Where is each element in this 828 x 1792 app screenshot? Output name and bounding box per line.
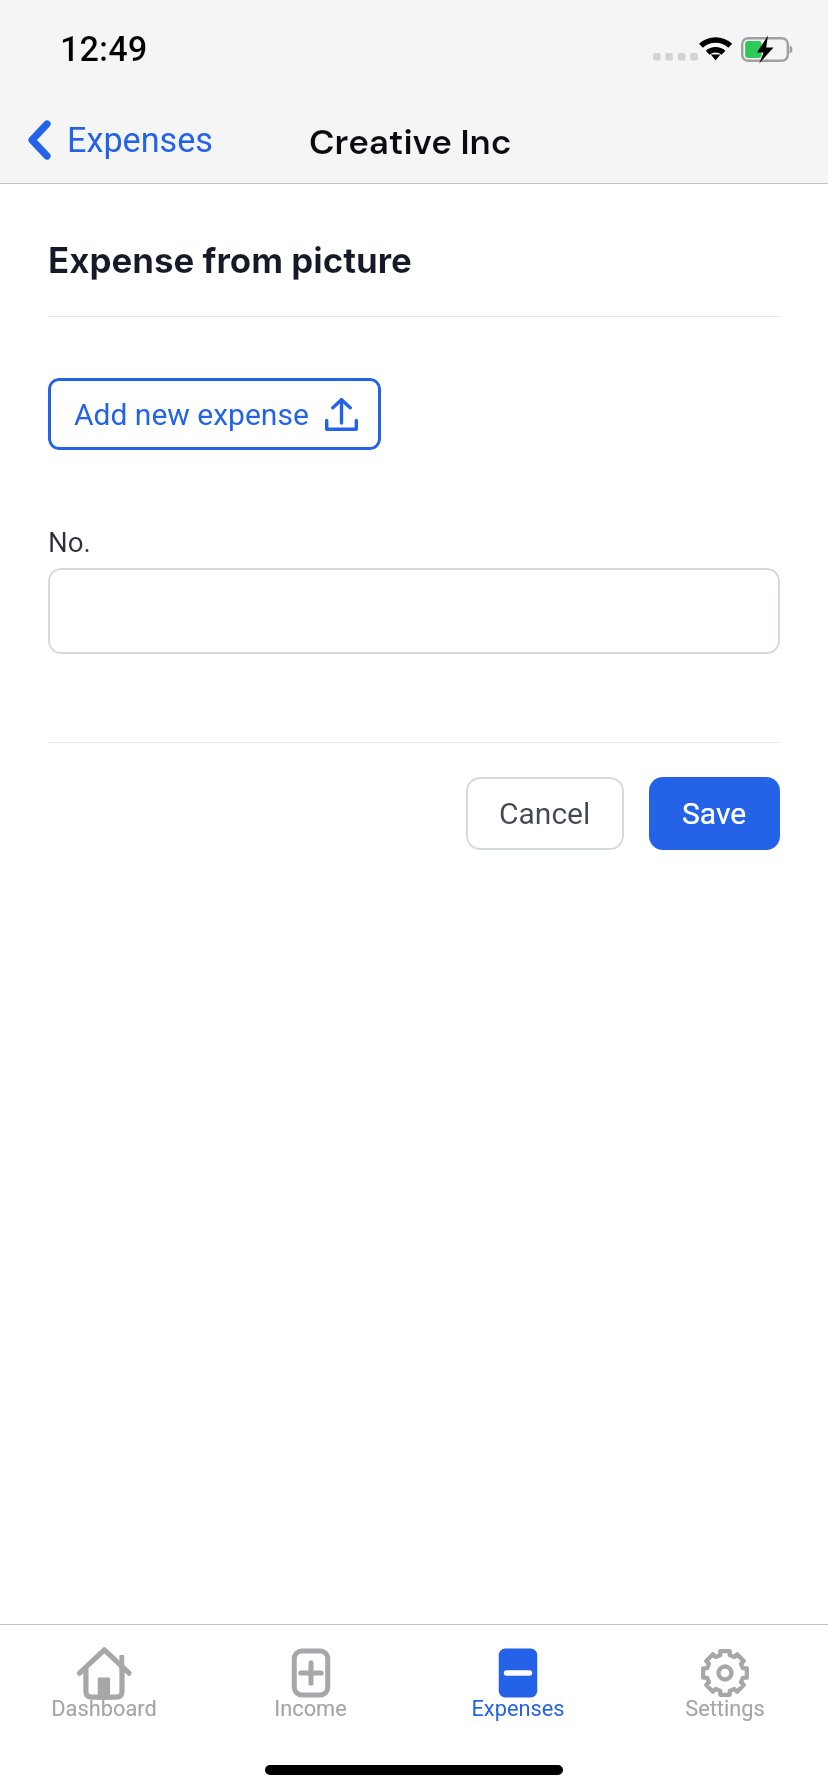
button[interactable]: Dashboard: [0, 1625, 207, 1745]
button[interactable]: Income: [207, 1625, 414, 1745]
staticText: Add new expense: [74, 397, 309, 432]
button[interactable]: Expenses: [28, 94, 214, 186]
staticText: Expense from picture: [48, 239, 412, 281]
button[interactable]: Settings: [621, 1625, 828, 1745]
staticText: Income: [274, 1696, 347, 1722]
staticText: Save: [682, 796, 747, 831]
staticText: Expenses: [471, 1696, 565, 1722]
staticText: Expenses: [67, 120, 214, 160]
button[interactable]: Add new expense: [48, 378, 381, 450]
staticText: Dashboard: [51, 1696, 157, 1722]
staticText: 12:49: [60, 29, 148, 69]
button[interactable]: No. input field: [48, 568, 780, 654]
staticText: Settings: [685, 1696, 765, 1722]
staticText: Cancel: [499, 796, 591, 831]
staticText: Creative Inc: [309, 119, 512, 165]
button[interactable]: Cancel: [466, 777, 624, 850]
button[interactable]: Expenses: [414, 1625, 621, 1745]
button[interactable]: Save: [649, 777, 780, 850]
staticText: No.: [48, 526, 91, 558]
